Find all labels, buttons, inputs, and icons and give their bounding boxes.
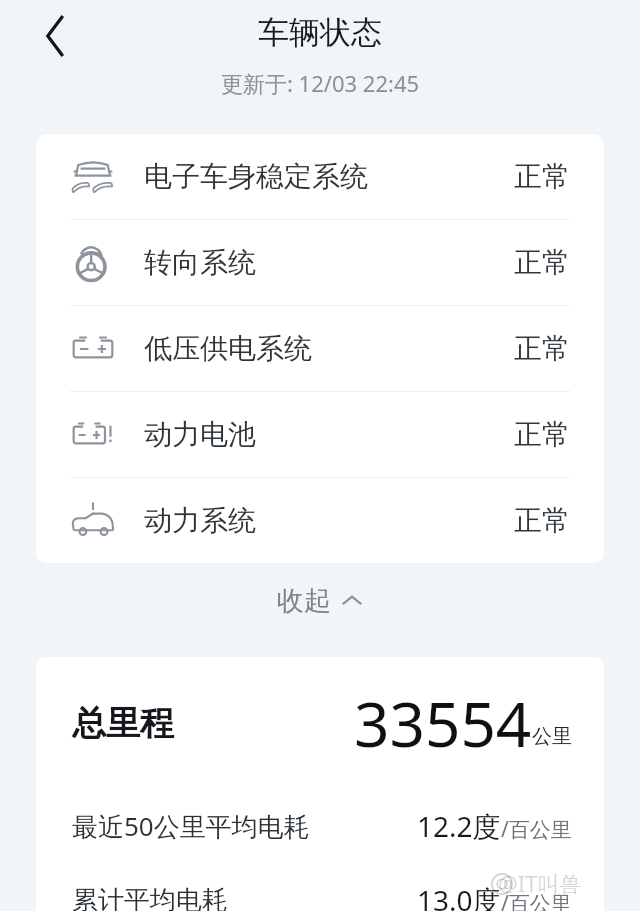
button[interactable]: 收起 (0, 566, 640, 636)
staticText: 正常 (514, 503, 570, 538)
staticText: 总里程 (72, 702, 174, 745)
staticText: 转向系统 (144, 245, 256, 280)
button[interactable]: Back (22, 6, 86, 70)
staticText: 正常 (514, 245, 570, 280)
staticText: 公里 (532, 724, 572, 749)
staticText: 更新于: 12/03 22:45 (221, 68, 420, 98)
staticText: 正常 (514, 417, 570, 452)
staticText: /百公里 (501, 889, 572, 911)
staticText: 最近50公里平均电耗 (72, 808, 310, 844)
staticText: 累计平均电耗 (72, 884, 228, 911)
staticText: 低压供电系统 (144, 331, 312, 366)
staticText: 12.2度 (417, 807, 501, 845)
staticText: 正常 (514, 331, 570, 366)
button[interactable]: 动力电池 (36, 392, 604, 477)
button[interactable]: 低压供电系统 (36, 306, 604, 391)
button[interactable]: 电子车身稳定系统 (36, 134, 604, 219)
staticText: 车辆状态 (258, 13, 382, 52)
staticText: 电子车身稳定系统 (144, 159, 368, 194)
staticText: 动力系统 (144, 503, 256, 538)
staticText: 13.0度 (417, 881, 501, 911)
button[interactable]: 动力系统 (36, 478, 604, 563)
staticText: 动力电池 (144, 417, 256, 452)
staticText: 33554 (354, 681, 532, 765)
button[interactable]: 最近50公里平均电耗 (36, 789, 604, 863)
button[interactable]: 转向系统 (36, 220, 604, 305)
staticText: /百公里 (501, 815, 572, 844)
button[interactable]: 累计平均电耗 (36, 863, 604, 911)
staticText: 正常 (514, 159, 570, 194)
staticText: 收起 (277, 584, 331, 618)
staticText: @IT叫兽 (498, 868, 582, 898)
